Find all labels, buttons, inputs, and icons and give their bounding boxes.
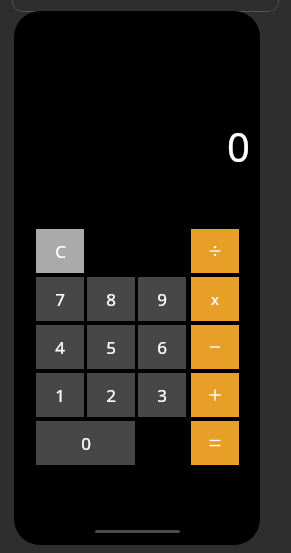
staticText: 9 <box>157 288 167 311</box>
staticText: 2 <box>106 384 116 407</box>
staticText: 7 <box>55 288 65 311</box>
staticText: x <box>211 289 219 309</box>
button[interactable]: 4 <box>36 325 84 369</box>
staticText: 1 <box>55 384 65 407</box>
button[interactable]: 2 <box>87 373 135 417</box>
button[interactable]: 5 <box>87 325 135 369</box>
button[interactable]: Minus <box>191 325 239 369</box>
button[interactable]: C <box>36 229 84 273</box>
staticText: 0 <box>81 432 91 455</box>
button[interactable]: Plus <box>191 373 239 417</box>
button[interactable]: Equals <box>191 421 239 465</box>
button[interactable]: 7 <box>36 277 84 321</box>
staticText: C <box>55 240 66 263</box>
staticText: 3 <box>157 384 167 407</box>
staticText: 5 <box>106 336 116 359</box>
staticText: 0 <box>227 119 250 173</box>
button[interactable]: 3 <box>138 373 186 417</box>
staticText: 8 <box>106 288 116 311</box>
button[interactable]: 9 <box>138 277 186 321</box>
button[interactable]: 1 <box>36 373 84 417</box>
button[interactable]: 8 <box>87 277 135 321</box>
button[interactable]: x <box>191 277 239 321</box>
staticText: 6 <box>157 336 167 359</box>
button[interactable]: Divide <box>191 229 239 273</box>
button[interactable]: 0 <box>36 421 135 465</box>
button[interactable]: 6 <box>138 325 186 369</box>
staticText: 4 <box>55 336 65 359</box>
